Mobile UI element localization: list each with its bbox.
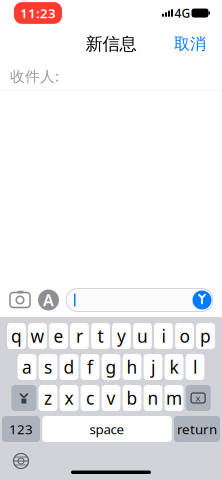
staticText: q xyxy=(11,324,22,347)
staticText: r xyxy=(76,324,83,347)
button[interactable]: l xyxy=(186,354,204,380)
button[interactable]: q xyxy=(7,323,26,349)
staticText: A xyxy=(43,289,54,311)
button[interactable]: g xyxy=(102,354,120,380)
staticText: s xyxy=(44,355,52,378)
staticText: f xyxy=(87,355,93,378)
button[interactable]: k xyxy=(165,354,183,380)
staticText: 123 xyxy=(9,420,33,438)
button[interactable]: n xyxy=(144,385,162,411)
staticText: y xyxy=(117,324,126,347)
staticText: d xyxy=(63,355,74,378)
staticText: k xyxy=(169,355,178,378)
staticText: 4G xyxy=(174,5,190,21)
button[interactable]: r xyxy=(70,323,89,349)
staticText: j xyxy=(151,355,155,378)
button[interactable]: 123 xyxy=(2,416,40,442)
staticText: space xyxy=(89,420,124,438)
staticText: a xyxy=(22,355,32,378)
button[interactable]: 收件人: xyxy=(0,62,222,90)
button[interactable]: t xyxy=(91,323,110,349)
staticText: i xyxy=(161,324,165,347)
staticText: m xyxy=(166,386,182,409)
button[interactable]: b xyxy=(123,385,141,411)
button[interactable]: j xyxy=(144,354,162,380)
button[interactable]: m xyxy=(165,385,183,411)
staticText: n xyxy=(147,386,158,409)
staticText: h xyxy=(126,355,137,378)
button[interactable]: Switch keyboard language xyxy=(8,449,34,473)
button[interactable]: a xyxy=(18,354,36,380)
button[interactable]: s xyxy=(39,354,57,380)
button[interactable]: f xyxy=(81,354,99,380)
staticText: 11:23 xyxy=(20,4,56,22)
button[interactable]: o xyxy=(175,323,194,349)
button[interactable]: i xyxy=(154,323,173,349)
staticText: e xyxy=(53,324,63,347)
button[interactable]: y xyxy=(112,323,131,349)
button[interactable]: Delete xyxy=(186,385,211,411)
staticText: v xyxy=(106,386,115,409)
staticText: c xyxy=(86,386,94,409)
button[interactable]: u xyxy=(133,323,152,349)
button[interactable]: App Store xyxy=(38,289,59,311)
button[interactable]: p xyxy=(196,323,215,349)
button[interactable]: 取消 xyxy=(166,28,214,60)
button[interactable]: v xyxy=(102,385,120,411)
staticText: t xyxy=(97,324,103,347)
button[interactable]: space xyxy=(42,416,172,442)
staticText: p xyxy=(200,324,211,347)
staticText: g xyxy=(105,355,116,378)
button[interactable]: return xyxy=(174,416,220,442)
staticText: z xyxy=(44,386,52,409)
button[interactable]: Camera xyxy=(9,289,31,311)
button[interactable]: h xyxy=(123,354,141,380)
button[interactable]: x xyxy=(60,385,78,411)
staticText: l xyxy=(193,355,197,378)
button[interactable]: Send xyxy=(192,290,211,309)
button[interactable]: w xyxy=(28,323,47,349)
staticText: b xyxy=(126,386,137,409)
staticText: x xyxy=(64,386,73,409)
button[interactable]: e xyxy=(49,323,68,349)
staticText: o xyxy=(179,324,189,347)
staticText: 取消 xyxy=(174,34,206,54)
staticText: u xyxy=(137,324,148,347)
staticText: 收件人: xyxy=(10,66,59,86)
staticText: x xyxy=(196,392,201,404)
staticText: 新信息 xyxy=(85,33,136,55)
staticText: w xyxy=(30,324,44,347)
button[interactable]: c xyxy=(81,385,99,411)
button[interactable]: d xyxy=(60,354,78,380)
button[interactable]: z xyxy=(39,385,57,411)
button[interactable]: Shift xyxy=(11,385,36,411)
staticText: return xyxy=(177,420,217,438)
